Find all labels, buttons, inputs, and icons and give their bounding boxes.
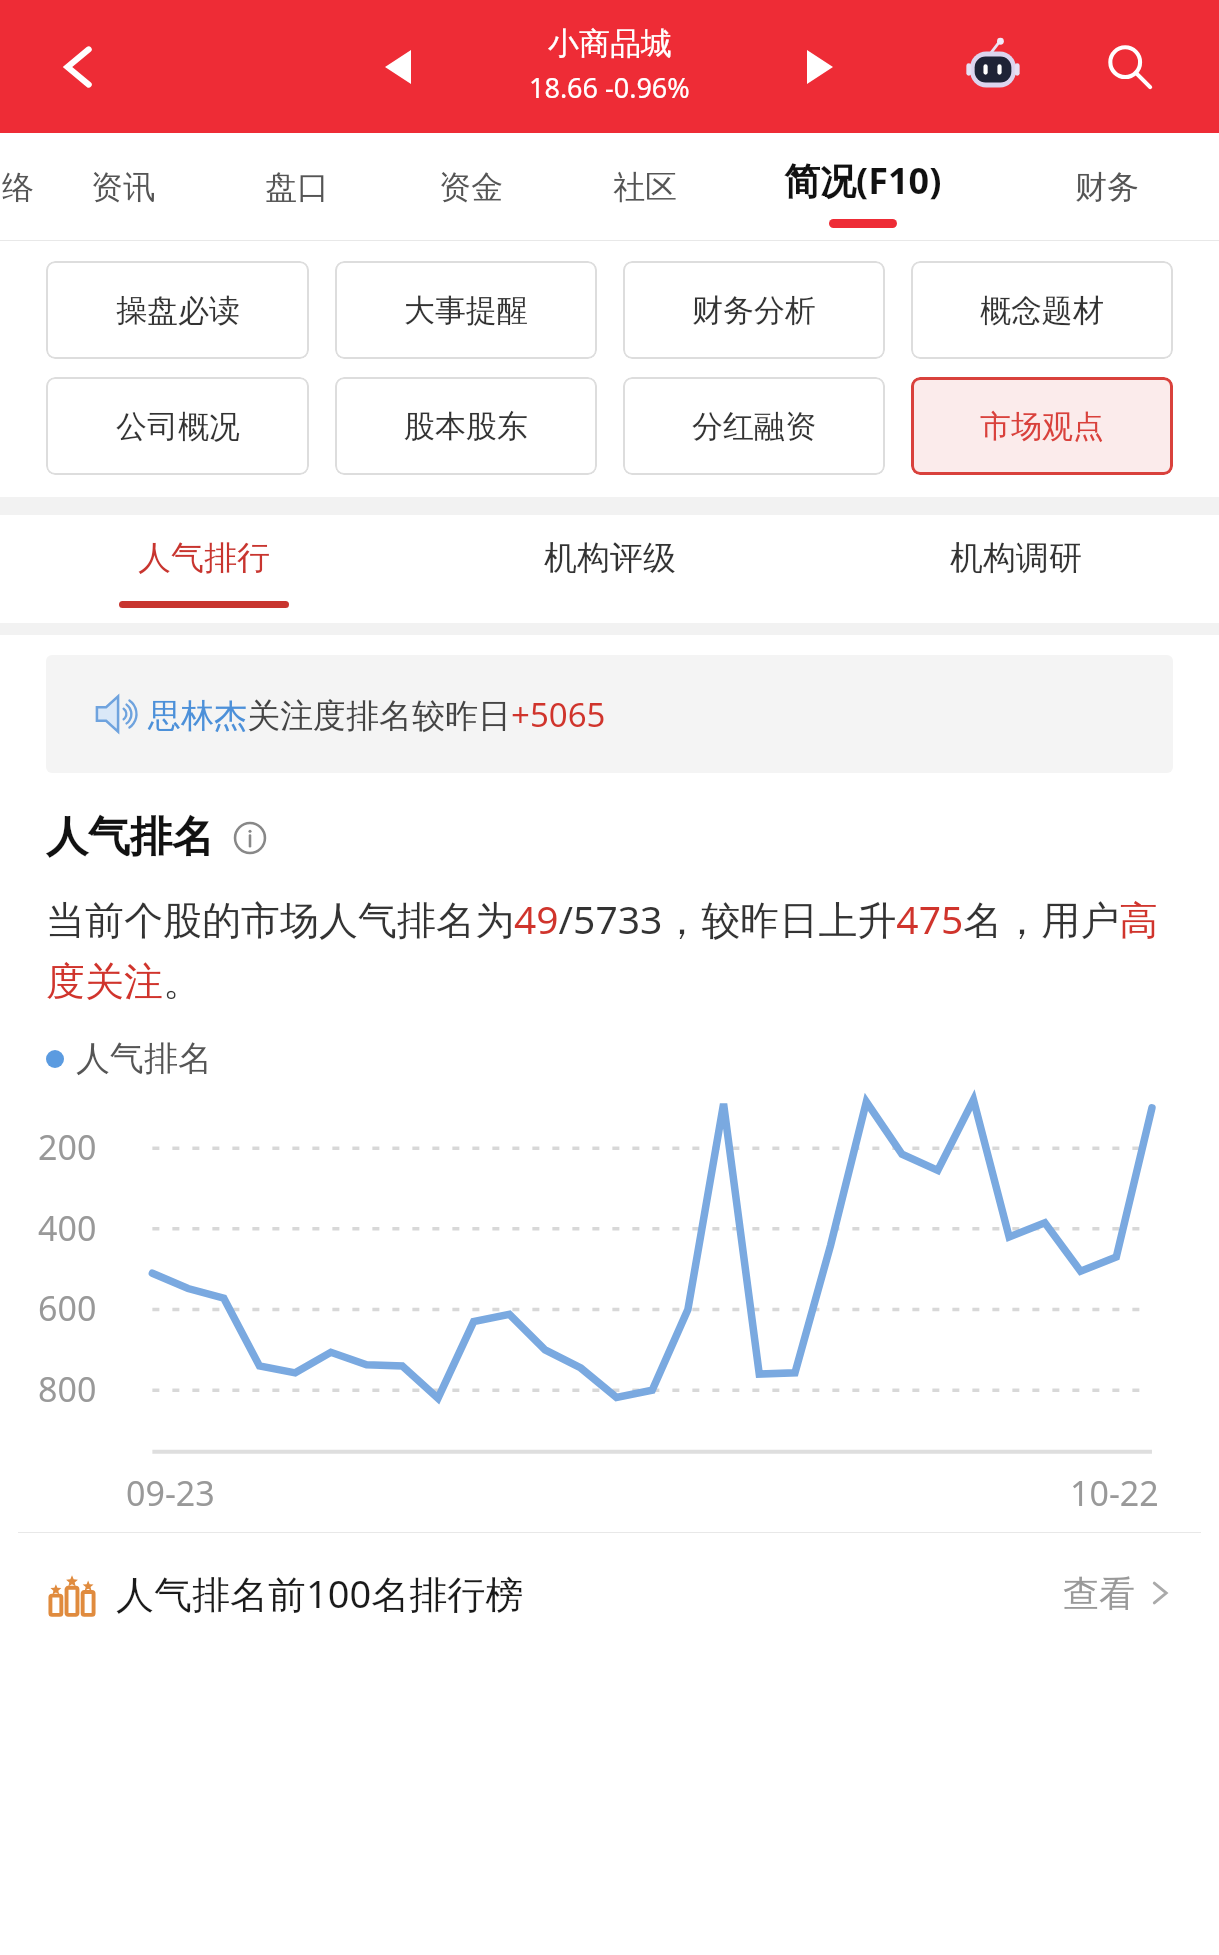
button[interactable]: 财务 — [994, 133, 1219, 240]
staticText: 公司概况 — [116, 407, 240, 446]
staticText: 社区 — [613, 167, 677, 207]
button[interactable]: Previous stock — [368, 37, 428, 97]
button[interactable]: Back — [44, 32, 114, 102]
staticText: 思林杰关注度排名较昨日+5065 — [148, 692, 606, 737]
staticText: 200 — [38, 1124, 97, 1170]
button[interactable]: 人气排名前100名排行榜 — [0, 1533, 1219, 1653]
button[interactable]: 人气排行 — [0, 515, 407, 623]
staticText: 人气排名前100名排行榜 — [116, 1567, 524, 1619]
staticText: 10-22 — [1070, 1470, 1159, 1516]
staticText: 大事提醒 — [404, 291, 528, 330]
staticText: 人气排名 — [76, 1037, 212, 1080]
staticText: 人气排名 — [46, 811, 214, 864]
staticText: 600 — [38, 1285, 97, 1331]
button[interactable]: 思林杰关注度排名较昨日+5065 — [46, 655, 1173, 773]
staticText: 当前个股的市场人气排名为49/5733，较昨日上升475名，用户高度关注。 — [46, 892, 1173, 1007]
staticText: 股本股东 — [404, 407, 528, 446]
button[interactable]: 公司概况 — [46, 377, 309, 475]
staticText: 市场观点 — [980, 407, 1104, 446]
button[interactable]: 操盘必读 — [46, 261, 309, 359]
staticText: 分红融资 — [692, 407, 816, 446]
staticText: 09-23 — [126, 1470, 215, 1516]
button[interactable]: 社区 — [558, 133, 732, 240]
staticText: 财务 — [1075, 167, 1139, 207]
button[interactable]: 资讯 — [36, 133, 210, 240]
button[interactable]: 股本股东 — [335, 377, 597, 475]
button[interactable]: AI assistant — [955, 29, 1031, 105]
staticText: 络 — [2, 167, 34, 207]
button[interactable]: 分红融资 — [623, 377, 885, 475]
button[interactable]: 机构调研 — [813, 515, 1219, 623]
staticText: 操盘必读 — [116, 291, 240, 330]
staticText: 小商品城 — [548, 24, 672, 63]
staticText: 18.66 -0.96% — [529, 69, 690, 106]
staticText: 机构调研 — [950, 537, 1082, 579]
staticText: 简况(F10) — [784, 156, 942, 205]
staticText: 800 — [38, 1366, 97, 1412]
button[interactable]: 络 — [0, 133, 36, 240]
staticText: 400 — [38, 1205, 97, 1251]
staticText: 资金 — [439, 167, 503, 207]
button[interactable]: 概念题材 — [911, 261, 1173, 359]
button[interactable]: Next stock — [790, 37, 850, 97]
staticText: 资讯 — [91, 167, 155, 207]
button[interactable]: 财务分析 — [623, 261, 885, 359]
button[interactable]: 市场观点 — [911, 377, 1173, 475]
button[interactable]: 简况(F10) — [732, 133, 994, 240]
button[interactable]: 机构评级 — [407, 515, 813, 623]
button[interactable]: Info — [228, 816, 272, 860]
staticText: 机构评级 — [544, 537, 676, 579]
button[interactable]: 盘口 — [210, 133, 384, 240]
staticText: 概念题材 — [980, 291, 1104, 330]
button[interactable]: Search — [1090, 27, 1170, 107]
staticText: 查看 — [1063, 1571, 1135, 1616]
staticText: 人气排行 — [138, 537, 270, 579]
staticText: 财务分析 — [692, 291, 816, 330]
button[interactable]: 资金 — [384, 133, 558, 240]
staticText: 盘口 — [265, 167, 329, 207]
button[interactable]: 大事提醒 — [335, 261, 597, 359]
